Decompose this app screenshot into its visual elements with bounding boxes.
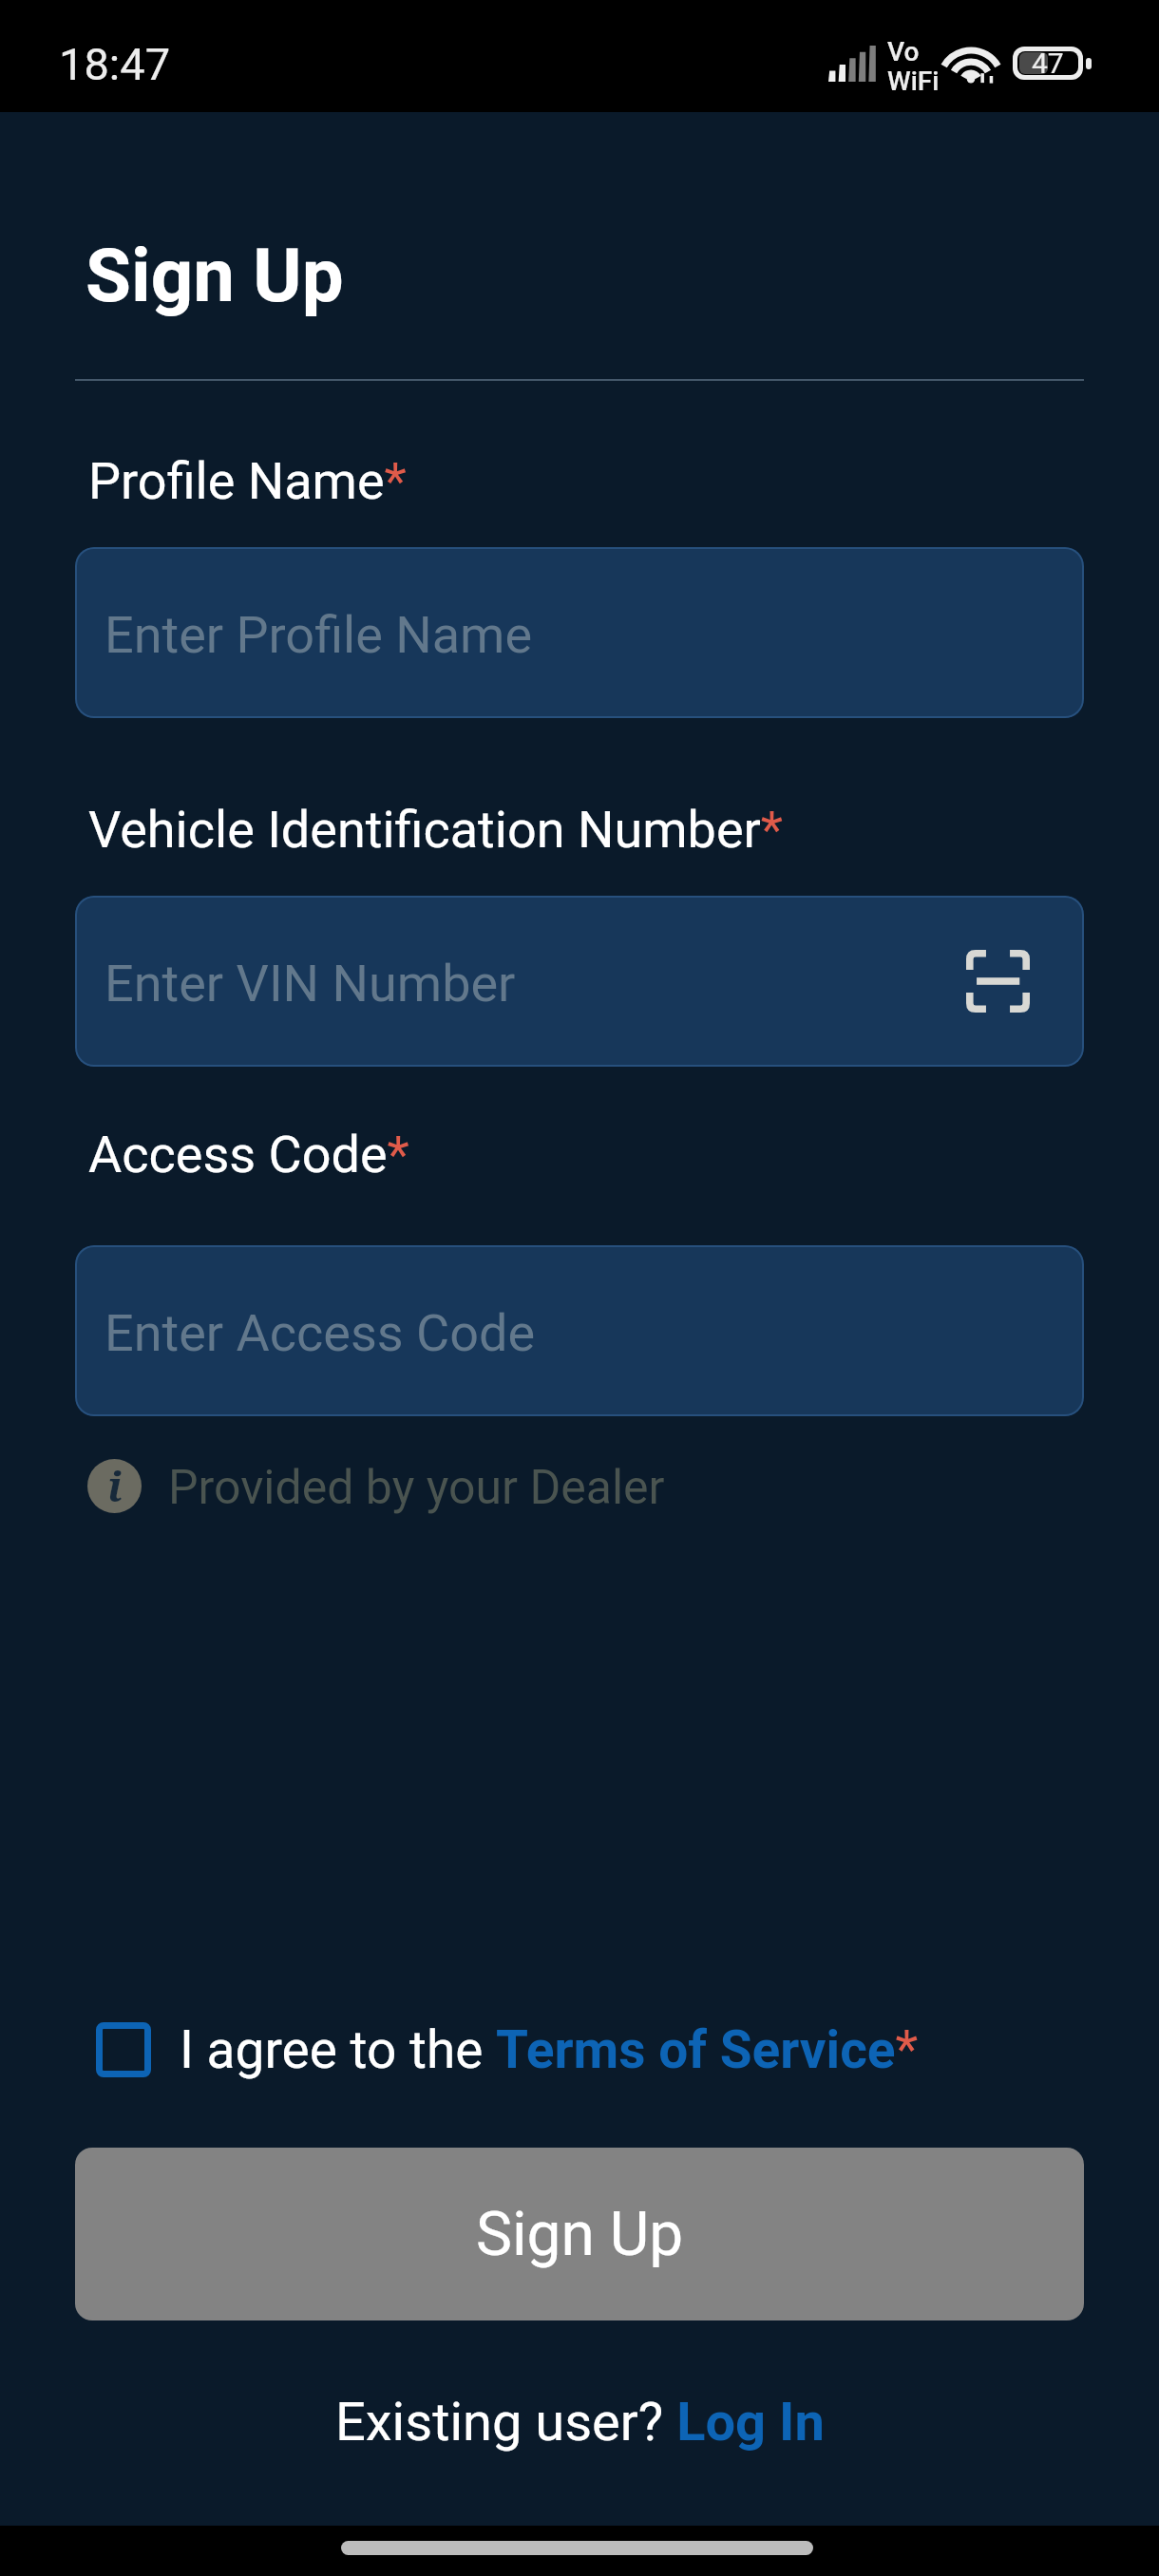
staticText: Existing user? Log In <box>335 2391 825 2453</box>
button[interactable]: Enter Profile Name <box>75 547 1084 718</box>
staticText: 18:47 <box>59 38 171 90</box>
staticText: I agree to the Terms of Service* <box>180 2019 919 2080</box>
staticText: Enter Access Code <box>104 1303 536 1363</box>
staticText: Provided by your Dealer <box>168 1460 665 1516</box>
staticText: Profile Name* <box>88 451 407 511</box>
button[interactable]: Enter VIN Number <box>75 896 1084 1067</box>
button[interactable]: Sign Up <box>75 2148 1084 2320</box>
staticText: i <box>107 1457 123 1511</box>
staticText: Enter VIN Number <box>104 954 516 1013</box>
button[interactable]: Existing user? Log In <box>0 2384 1159 2460</box>
staticText: Vehicle Identification Number* <box>88 800 784 860</box>
staticText: 47 <box>1032 47 1064 80</box>
staticText: WiFi <box>887 66 940 97</box>
staticText: Access Code* <box>88 1125 409 1184</box>
staticText: Sign Up <box>476 2199 684 2270</box>
staticText: Enter Profile Name <box>104 605 533 665</box>
button[interactable]: I agree to the Terms of Service* <box>96 2019 919 2080</box>
button[interactable]: Scan VIN <box>966 950 1030 1013</box>
staticText: Vo <box>887 36 920 67</box>
staticText: Sign Up <box>85 233 344 319</box>
button[interactable]: Enter Access Code <box>75 1245 1084 1416</box>
